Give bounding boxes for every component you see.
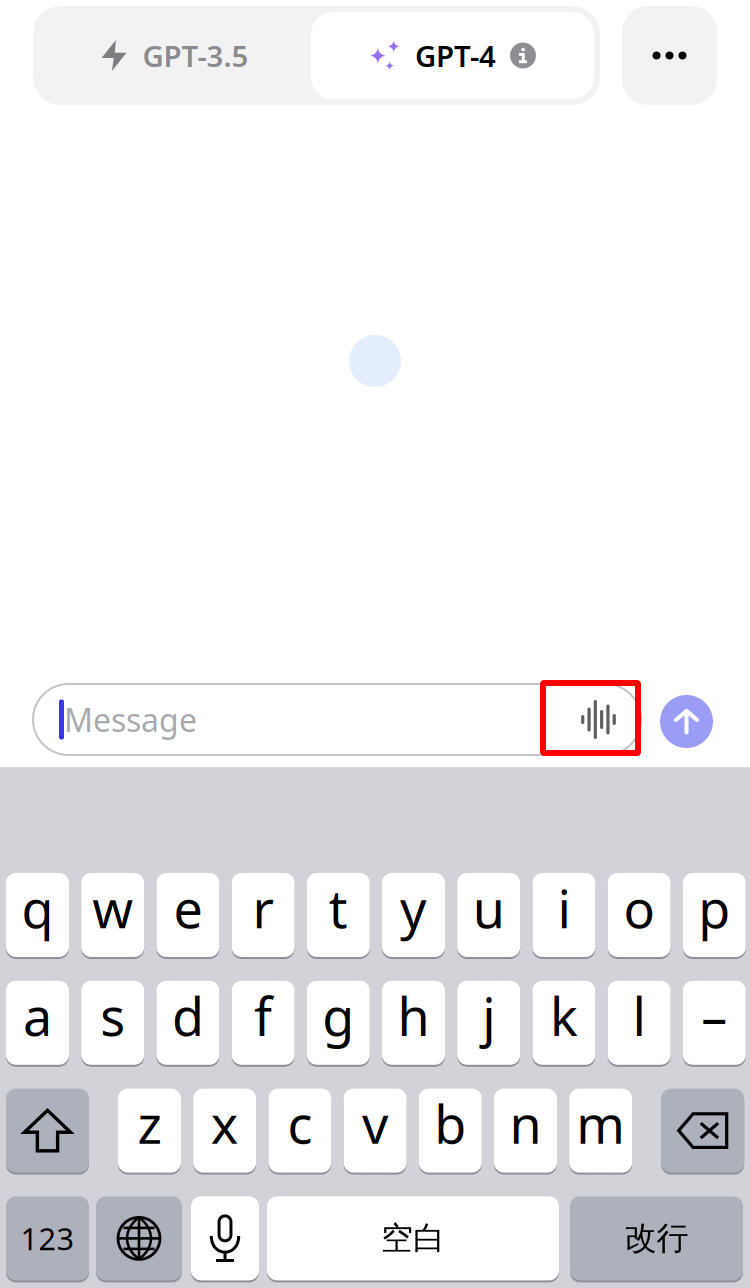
staticText: p [698,873,730,943]
button[interactable]: t [307,872,370,958]
staticText: z [137,1089,161,1158]
staticText: y [400,873,427,943]
staticText: g [322,981,354,1050]
button[interactable]: b [419,1088,482,1174]
button[interactable]: r [232,872,295,958]
button[interactable]: – [683,980,746,1066]
staticText: x [211,1089,239,1158]
staticText: d [172,981,204,1050]
button[interactable]: Delete [661,1088,744,1174]
staticText: – [701,981,727,1050]
staticText: 空白 [381,1219,445,1258]
staticText: j [482,981,495,1050]
button[interactable]: j [457,980,520,1066]
button[interactable]: s [81,980,144,1066]
staticText: GPT-3.5 [142,36,248,75]
button[interactable]: More options [622,6,717,105]
button[interactable]: GPT-3.5 [39,12,311,99]
button[interactable]: Numbers [6,1195,89,1281]
button[interactable]: k [532,980,595,1066]
staticText: o [624,873,655,943]
button[interactable]: c [268,1088,331,1174]
button[interactable]: v [344,1088,407,1174]
staticText: m [576,1089,625,1158]
staticText: e [173,873,202,943]
button[interactable]: Shift [6,1088,89,1174]
staticText: c [287,1089,312,1158]
button[interactable]: z [118,1088,181,1174]
staticText: s [100,981,125,1050]
button[interactable]: p [683,872,746,958]
button[interactable]: Next keyboard [96,1195,182,1281]
staticText: b [434,1089,466,1158]
button[interactable]: a [6,980,69,1066]
staticText: w [92,873,133,943]
staticText: f [254,981,272,1050]
staticText: k [550,981,578,1050]
button[interactable]: d [156,980,219,1066]
staticText: v [362,1089,388,1158]
button[interactable]: Dictation [191,1195,259,1281]
staticText: n [509,1089,541,1158]
button[interactable]: e [156,872,219,958]
staticText: 123 [20,1218,74,1259]
button[interactable]: w [81,872,144,958]
button[interactable]: y [382,872,445,958]
button[interactable]: m [569,1088,632,1174]
staticText: i [557,873,570,943]
button[interactable]: o [608,872,671,958]
button[interactable]: q [6,872,69,958]
staticText: 改行 [624,1219,688,1258]
button[interactable]: f [232,980,295,1066]
staticText: r [253,873,274,943]
staticText: h [397,981,429,1050]
button[interactable]: n [494,1088,557,1174]
button[interactable]: x [193,1088,256,1174]
staticText: l [633,981,646,1050]
staticText: GPT-4 [415,36,496,75]
button[interactable]: u [457,872,520,958]
button[interactable]: Space [267,1195,559,1281]
button[interactable]: i [532,872,595,958]
staticText: u [473,873,505,943]
button[interactable]: h [382,980,445,1066]
button[interactable]: Send [660,695,713,748]
staticText: q [21,873,53,943]
button[interactable]: g [307,980,370,1066]
button[interactable]: l [608,980,671,1066]
staticText: t [329,873,348,943]
staticText: Message [64,698,197,741]
staticText: a [23,981,52,1050]
button[interactable]: Return [570,1195,743,1281]
button[interactable]: GPT-4 [311,12,594,99]
